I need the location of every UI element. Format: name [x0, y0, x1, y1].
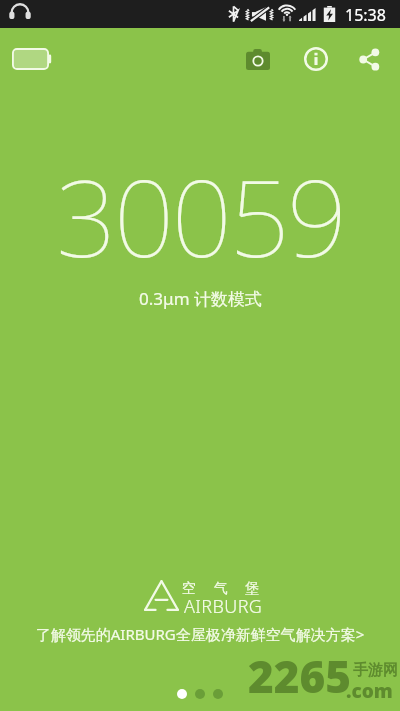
button[interactable]: Share	[345, 35, 393, 83]
button[interactable]: 了解领先的AIRBURG全屋极净新鲜空气解决方案>	[0, 624, 400, 644]
staticText: .com	[346, 678, 393, 704]
button[interactable]: AIRBURG logo	[142, 573, 258, 613]
staticText: 2265	[248, 646, 352, 706]
button[interactable]: Battery level	[6, 35, 58, 83]
staticText: 15:38	[345, 4, 386, 26]
button[interactable]: Page 2	[195, 689, 205, 699]
button[interactable]: Camera	[234, 35, 282, 83]
button[interactable]: Information	[292, 35, 340, 83]
staticText: 30059	[56, 144, 345, 288]
staticText: AIRBURG	[184, 594, 263, 619]
button[interactable]: Page 1	[177, 689, 187, 699]
staticText: 手游网	[353, 661, 398, 680]
staticText: 0.3μm 计数模式	[139, 287, 262, 310]
staticText: 空 气 堡	[182, 578, 267, 597]
button[interactable]: Page 3	[213, 689, 223, 699]
